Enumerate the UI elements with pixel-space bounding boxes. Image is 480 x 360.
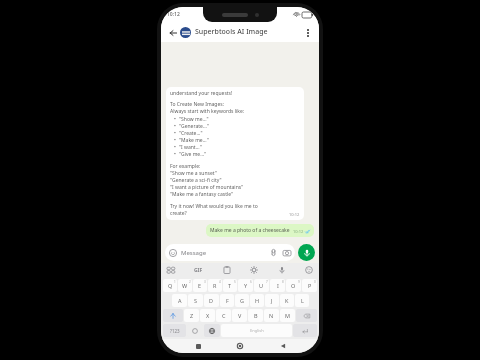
staticText: "Create..."	[179, 130, 203, 137]
button[interactable]: GIF	[192, 265, 205, 276]
staticText: •	[174, 116, 179, 123]
button[interactable]: F	[220, 294, 234, 307]
staticText: R	[213, 282, 217, 289]
button[interactable]: M	[280, 309, 295, 322]
button[interactable]: Back	[277, 340, 289, 352]
staticText: Make me a photo of a cheesecake	[210, 227, 290, 234]
staticText: 10:12	[293, 229, 304, 234]
staticText: ?123	[170, 328, 180, 334]
staticText: 7	[266, 280, 268, 284]
button[interactable]: Camera	[282, 248, 291, 257]
staticText: D	[209, 297, 214, 304]
staticText: "Show me..."	[179, 116, 209, 123]
button[interactable]: Emoji	[187, 324, 203, 337]
button[interactable]: Shift	[163, 309, 183, 322]
button[interactable]: 1	[163, 279, 177, 292]
button[interactable]: D	[204, 294, 219, 307]
button[interactable]: Profile photo	[180, 27, 191, 38]
staticText: I	[277, 282, 279, 289]
button[interactable]: Language	[204, 324, 220, 337]
staticText: "Make me a fantasy castle"	[170, 191, 234, 198]
button[interactable]: 5	[223, 279, 237, 292]
button[interactable]: C	[216, 309, 231, 322]
button[interactable]: Recents	[192, 340, 204, 352]
button[interactable]: Back	[166, 26, 179, 39]
staticText: M	[285, 312, 290, 319]
button[interactable]: L	[295, 294, 309, 307]
button[interactable]: More options	[301, 26, 314, 39]
staticText: English	[250, 328, 264, 333]
button[interactable]: understand your requests!	[166, 87, 304, 220]
staticText: "I want..."	[179, 144, 202, 151]
staticText: Try it now! What would you like me to	[170, 203, 258, 210]
button[interactable]: 7	[254, 279, 269, 292]
button[interactable]: Enter	[293, 324, 317, 337]
button[interactable]: Space	[221, 324, 292, 337]
staticText: •	[174, 123, 179, 130]
button[interactable]: N	[264, 309, 279, 322]
staticText: GIF	[194, 267, 203, 274]
button[interactable]: J	[265, 294, 279, 307]
button[interactable]: 8	[270, 279, 285, 292]
button[interactable]: G	[235, 294, 249, 307]
staticText: •	[174, 130, 179, 137]
button[interactable]: Superbtools AI Image Generator	[195, 27, 301, 37]
button[interactable]: Voice message	[298, 244, 315, 261]
button[interactable]: B	[248, 309, 263, 322]
staticText: E	[198, 282, 202, 289]
staticText: S	[194, 297, 198, 304]
staticText: •	[174, 137, 179, 144]
button[interactable]: ?123	[163, 324, 186, 337]
staticText: P	[308, 282, 312, 289]
staticText: X	[206, 312, 210, 319]
button[interactable]: 0	[302, 279, 317, 292]
button[interactable]: 6	[238, 279, 253, 292]
staticText: 5	[234, 280, 236, 284]
button[interactable]: Voice input	[276, 264, 288, 276]
staticText: B	[254, 312, 258, 319]
button[interactable]: Message	[165, 244, 295, 261]
button[interactable]: Palette	[303, 264, 315, 276]
staticText: "Generate..."	[179, 123, 209, 130]
staticText: •	[174, 151, 179, 158]
button[interactable]: S	[188, 294, 203, 307]
button[interactable]: Home	[234, 340, 246, 352]
button[interactable]: V	[232, 309, 247, 322]
button[interactable]: Clipboard	[221, 264, 233, 276]
staticText: N	[269, 312, 274, 319]
staticText: To Create New Images:	[170, 101, 224, 108]
staticText: create?	[170, 210, 187, 217]
staticText: 3	[204, 280, 206, 284]
button[interactable]: 9	[286, 279, 301, 292]
button[interactable]: Backspace	[296, 309, 317, 322]
staticText: A	[178, 297, 182, 304]
staticText: G	[240, 297, 245, 304]
staticText: U	[259, 282, 264, 289]
button[interactable]: Settings	[248, 264, 260, 276]
button[interactable]: A	[172, 294, 187, 307]
staticText: 10:12	[289, 212, 300, 217]
staticText: T	[228, 282, 232, 289]
button[interactable]: 4	[208, 279, 222, 292]
staticText: C	[222, 312, 226, 319]
staticText: 2	[189, 280, 191, 284]
staticText: O	[291, 282, 296, 289]
staticText: Q	[168, 282, 173, 289]
button[interactable]: Keyboard layout	[165, 264, 177, 276]
button[interactable]: 2	[178, 279, 192, 292]
staticText: J	[271, 297, 273, 304]
staticText: •	[174, 144, 179, 151]
button[interactable]: X	[200, 309, 215, 322]
button[interactable]: Z	[184, 309, 199, 322]
button[interactable]: H	[250, 294, 264, 307]
button[interactable]: 3	[193, 279, 207, 292]
staticText: "Show me a sunset"	[170, 170, 217, 177]
staticText: H	[255, 297, 260, 304]
button[interactable]: Attach	[269, 248, 278, 257]
button[interactable]: K	[280, 294, 294, 307]
staticText: Y	[244, 282, 248, 289]
staticText: F	[226, 297, 229, 304]
staticText: "Give me..."	[179, 151, 207, 158]
staticText: Always start with keywords like:	[170, 108, 245, 115]
button[interactable]: Make me a photo of a cheesecake	[206, 224, 314, 237]
